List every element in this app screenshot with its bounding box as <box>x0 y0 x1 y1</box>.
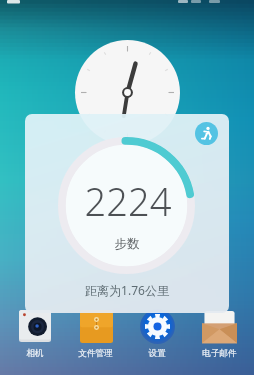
staticText: 步数 <box>25 236 229 252</box>
button[interactable]: Clock <box>75 40 180 145</box>
button[interactable]: 电子邮件 <box>188 308 250 359</box>
staticText: 电子邮件 <box>202 348 237 359</box>
staticText: 距离为1.76公里 <box>25 282 229 298</box>
button[interactable]: Activity <box>195 122 218 145</box>
staticText: 文件管理 <box>78 348 113 359</box>
button[interactable]: 相机 <box>4 308 65 359</box>
button[interactable]: 文件管理 <box>65 308 126 359</box>
button[interactable]: 设置 <box>126 308 188 359</box>
staticText: 设置 <box>148 348 166 359</box>
staticText: 相机 <box>26 348 44 359</box>
button[interactable]: Activity <box>25 114 229 313</box>
staticText: 2224 <box>26 175 229 227</box>
